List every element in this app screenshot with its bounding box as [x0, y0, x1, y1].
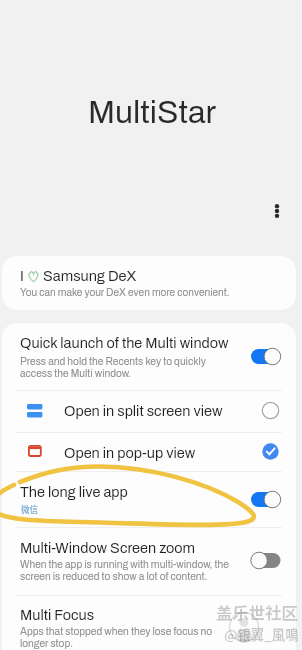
- button[interactable]: [2, 595, 296, 650]
- staticText: The long live app: [20, 484, 128, 500]
- button[interactable]: More options: [262, 196, 292, 226]
- staticText: I: [20, 268, 24, 284]
- staticText: 微信: [21, 503, 39, 515]
- staticText: MultiStar: [88, 95, 217, 130]
- staticText: When the app is running with multi-windo…: [20, 559, 229, 582]
- staticText: Samsung DeX: [43, 268, 137, 284]
- staticText: @银翼_風鳴: [224, 624, 299, 643]
- button[interactable]: Switch off: [250, 551, 282, 570]
- button[interactable]: [2, 323, 296, 390]
- staticText: 盖乐世社区: [216, 600, 298, 624]
- button[interactable]: [2, 432, 296, 471]
- staticText: Multi Focus: [20, 607, 95, 623]
- button[interactable]: I: [2, 256, 296, 310]
- button[interactable]: Switch on: [250, 490, 282, 509]
- button[interactable]: Selected: [259, 440, 282, 463]
- button[interactable]: Not selected: [259, 399, 282, 422]
- staticText: You can make your DeX even more convenie…: [20, 287, 230, 298]
- button[interactable]: [2, 471, 296, 527]
- button[interactable]: [2, 390, 296, 432]
- staticText: Open in pop-up view: [64, 445, 196, 461]
- staticText: Open in split screen view: [64, 403, 223, 419]
- staticText: Quick launch of the Multi window: [20, 335, 229, 351]
- staticText: Apps that stopped when they lose focus n…: [20, 626, 213, 649]
- staticText: Multi-Window Screen zoom: [20, 540, 196, 556]
- button[interactable]: Switch on: [250, 347, 282, 366]
- staticText: Press and hold the Recents key to quickl…: [20, 356, 206, 379]
- button[interactable]: [2, 527, 296, 595]
